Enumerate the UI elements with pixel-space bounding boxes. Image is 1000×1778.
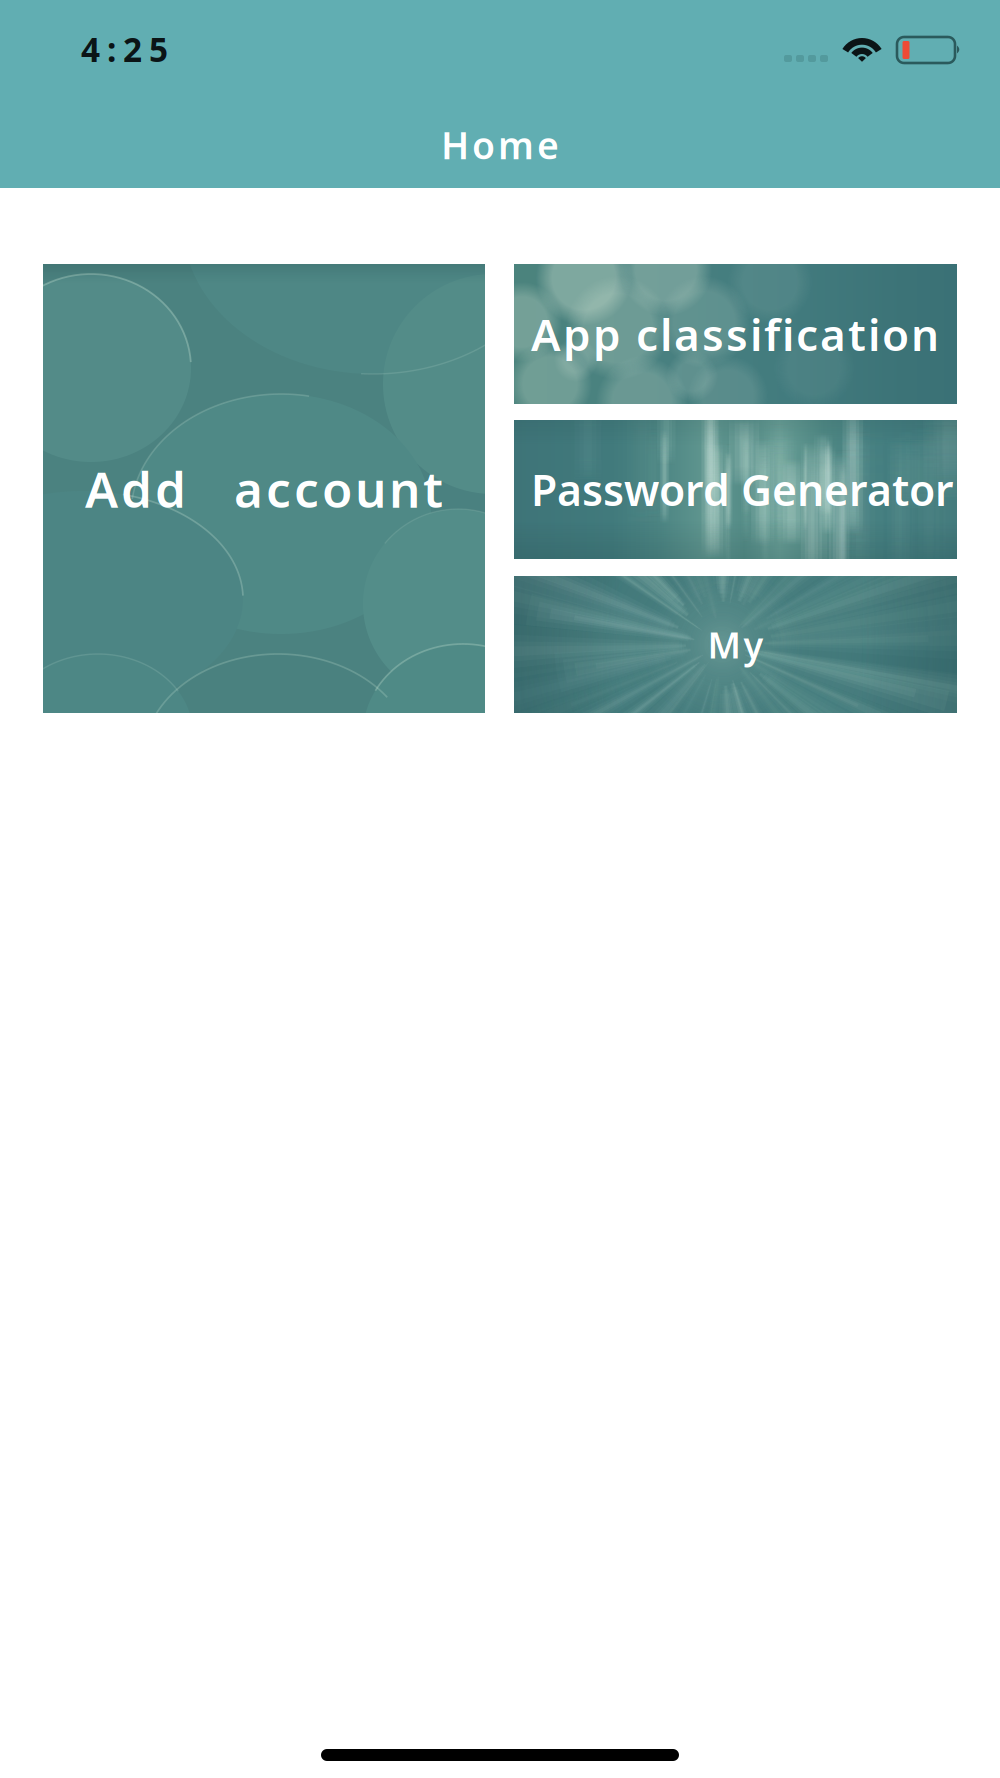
button[interactable]: Password Generator	[514, 420, 957, 559]
staticText: App classification	[531, 305, 939, 363]
button[interactable]: My	[514, 576, 957, 713]
staticText: Add	[85, 456, 186, 521]
staticText: Home	[441, 120, 559, 170]
staticText: My	[707, 621, 763, 668]
staticText: 4:25	[81, 27, 168, 71]
button[interactable]: Add	[43, 264, 485, 713]
staticText: account	[234, 456, 443, 521]
button[interactable]: App classification	[514, 264, 957, 404]
staticText: Password Generator	[531, 461, 954, 518]
